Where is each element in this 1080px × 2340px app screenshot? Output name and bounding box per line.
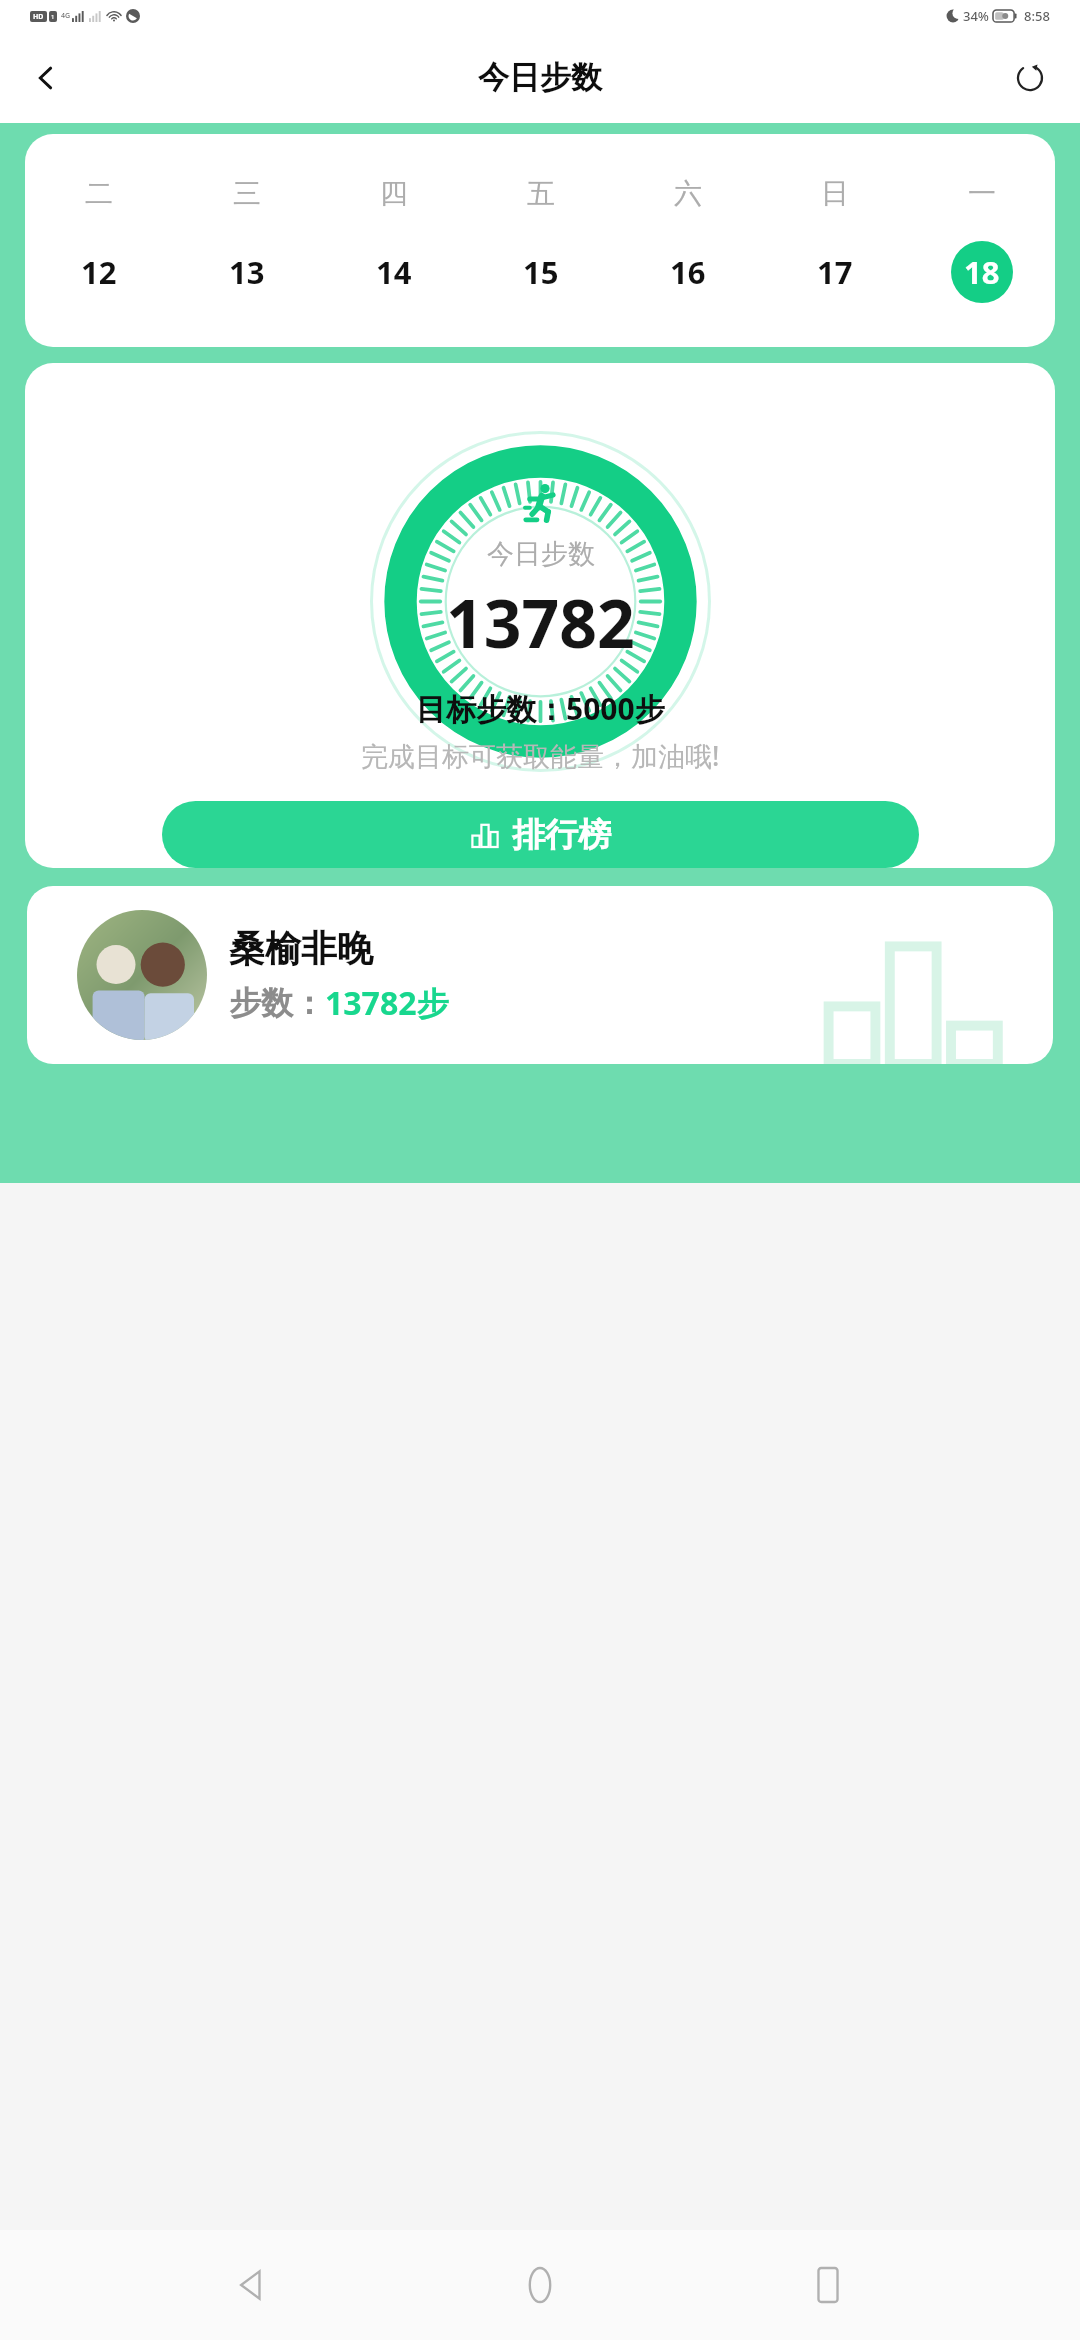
button[interactable]: 二 [25, 134, 1055, 347]
staticText: 桑榆非晚 [229, 926, 373, 971]
staticText: 二 [85, 176, 113, 211]
staticText: 一 [968, 176, 996, 211]
staticText: 今日步数 [487, 537, 595, 571]
staticText: 14 [376, 251, 412, 293]
staticText: 目标步数：5000步 [416, 688, 665, 729]
button[interactable]: 17 [804, 241, 866, 303]
staticText: 四 [380, 176, 408, 211]
staticText: 4G [61, 11, 71, 21]
staticText: 六 [674, 176, 702, 211]
staticText: 12 [81, 251, 117, 293]
button[interactable]: 12 [68, 241, 130, 303]
staticText: 五 [527, 176, 555, 211]
staticText: 今日步数 [478, 58, 602, 97]
button[interactable]: Home [504, 2249, 576, 2321]
staticText: 8:58 [1024, 7, 1050, 25]
staticText: 17 [817, 251, 853, 293]
staticText: 16 [670, 251, 706, 293]
button[interactable]: Back [18, 50, 74, 106]
button[interactable]: 18 [951, 241, 1013, 303]
button[interactable]: Recent apps [792, 2249, 864, 2321]
button[interactable]: 排行榜 [162, 801, 919, 868]
staticText: 排行榜 [512, 814, 611, 856]
staticText: 完成目标可获取能量，加油哦! [361, 737, 720, 774]
button[interactable]: 16 [657, 241, 719, 303]
button[interactable]: 15 [510, 241, 572, 303]
staticText: 13 [229, 251, 265, 293]
staticText: 步数： [229, 983, 325, 1023]
staticText: 日 [821, 176, 849, 211]
button[interactable]: 桑榆非晚 [27, 886, 1053, 1064]
staticText: 13782 [446, 577, 635, 667]
staticText: 34% [963, 7, 989, 25]
button[interactable]: 14 [363, 241, 425, 303]
button[interactable]: Back [216, 2249, 288, 2321]
staticText: 18 [964, 251, 1000, 293]
staticText: 三 [233, 176, 261, 211]
button[interactable]: 13 [216, 241, 278, 303]
staticText: 13782步 [325, 981, 449, 1025]
staticText: 15 [523, 251, 559, 293]
staticText: 1 [51, 13, 55, 21]
button[interactable]: Share [1002, 50, 1058, 106]
staticText: HD [33, 12, 44, 22]
